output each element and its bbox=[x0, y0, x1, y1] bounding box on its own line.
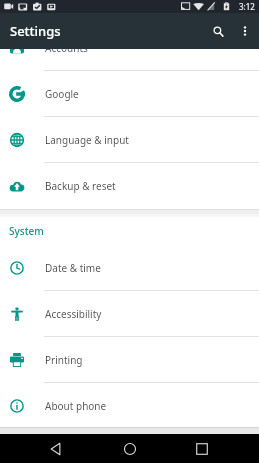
staticText: Google bbox=[45, 87, 79, 101]
staticText: About phone bbox=[45, 399, 107, 413]
button[interactable]: Google bbox=[0, 71, 259, 117]
staticText: Date & time bbox=[45, 261, 101, 275]
staticText: Accessibility bbox=[45, 307, 102, 321]
button[interactable]: About phone bbox=[0, 383, 259, 429]
button[interactable]: Accounts bbox=[0, 25, 259, 71]
button[interactable]: Back bbox=[42, 435, 70, 463]
button[interactable]: Home bbox=[116, 435, 144, 463]
button[interactable]: Backup & reset bbox=[0, 163, 259, 209]
button[interactable]: Recents bbox=[188, 435, 216, 463]
staticText: Printing bbox=[45, 353, 83, 367]
button[interactable]: Printing bbox=[0, 337, 259, 383]
staticText: System bbox=[9, 224, 44, 238]
staticText: Language & input bbox=[45, 133, 129, 147]
button[interactable]: Accessibility bbox=[0, 291, 259, 337]
button[interactable]: Language & input bbox=[0, 117, 259, 163]
staticText: 3:12 bbox=[239, 1, 255, 12]
button[interactable]: Search bbox=[203, 16, 233, 46]
staticText: Settings bbox=[10, 22, 61, 40]
button[interactable]: More options bbox=[232, 18, 258, 44]
staticText: Accounts bbox=[45, 41, 88, 55]
staticText: Backup & reset bbox=[45, 179, 116, 193]
button[interactable]: Date & time bbox=[0, 245, 259, 291]
